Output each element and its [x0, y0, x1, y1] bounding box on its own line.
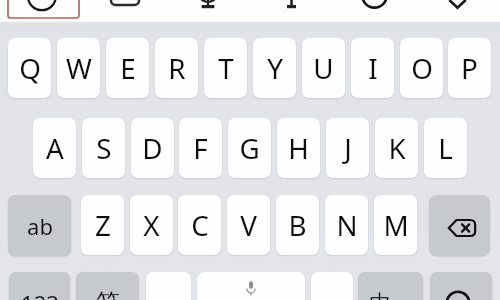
button[interactable]: P	[448, 38, 491, 98]
button[interactable]: V	[227, 195, 270, 255]
staticText: F	[193, 129, 208, 167]
button[interactable]: J	[326, 118, 369, 178]
staticText: T	[218, 49, 234, 87]
staticText: Y	[267, 49, 283, 87]
button[interactable]: F	[179, 118, 222, 178]
button[interactable]: Emoji	[361, 0, 388, 9]
staticText: J	[344, 129, 352, 167]
staticText: S	[96, 129, 112, 167]
staticText: B	[288, 206, 307, 244]
button[interactable]: Voice input	[200, 0, 216, 8]
staticText: D	[142, 129, 163, 167]
staticText: 符	[96, 288, 120, 300]
button[interactable]: 123	[9, 272, 70, 300]
staticText: X	[143, 206, 160, 244]
button[interactable]: G	[228, 118, 271, 178]
button[interactable]: E	[106, 38, 149, 98]
button[interactable]: ab	[8, 195, 71, 256]
button[interactable]: T	[204, 38, 247, 98]
staticText: N	[336, 206, 358, 244]
button[interactable]: Text settings	[287, 0, 296, 8]
staticText: R	[168, 49, 186, 87]
staticText: C	[191, 206, 209, 244]
staticText: 123	[21, 288, 59, 300]
button[interactable]: B	[276, 195, 319, 255]
staticText: E	[120, 49, 136, 87]
button[interactable]: X	[130, 195, 173, 255]
button[interactable]: Voice input	[197, 272, 305, 300]
staticText: M	[383, 206, 409, 244]
button[interactable]: Q	[8, 38, 51, 98]
button[interactable]: Z	[81, 195, 124, 255]
button[interactable]: C	[178, 195, 221, 255]
staticText: L	[438, 129, 453, 167]
button[interactable]: I	[351, 38, 394, 98]
button[interactable]: Clipboard	[111, 0, 139, 5]
button[interactable]	[146, 272, 191, 300]
staticText: A	[46, 129, 64, 167]
staticText: I	[368, 49, 378, 87]
button[interactable]: L	[424, 118, 467, 178]
staticText: P	[461, 49, 478, 87]
button[interactable]: S	[82, 118, 125, 178]
button[interactable]: A	[33, 118, 76, 178]
button[interactable]: M	[374, 195, 417, 255]
staticText: ab	[27, 211, 53, 241]
button[interactable]: N	[325, 195, 368, 255]
staticText: U	[313, 49, 334, 87]
button[interactable]: Y	[253, 38, 296, 98]
button[interactable]: H	[277, 118, 320, 178]
button[interactable]: 中	[358, 272, 423, 300]
staticText: G	[239, 129, 260, 167]
button[interactable]: Return	[430, 272, 492, 300]
staticText: V	[240, 206, 257, 244]
button[interactable]: O	[400, 38, 443, 98]
button[interactable]: K	[375, 118, 418, 178]
staticText: Z	[95, 206, 111, 244]
staticText: K	[388, 129, 406, 167]
button[interactable]: R	[155, 38, 198, 98]
staticText: H	[288, 129, 309, 167]
button[interactable]: Handwriting	[8, 0, 79, 18]
button[interactable]: 符	[76, 272, 139, 300]
staticText: O	[411, 49, 433, 87]
button[interactable]: D	[131, 118, 174, 178]
button[interactable]: U	[302, 38, 345, 98]
button[interactable]: Hide keyboard	[448, 0, 467, 9]
staticText: 中	[369, 289, 392, 300]
button[interactable]: Backspace	[429, 195, 490, 256]
button[interactable]: W	[57, 38, 100, 98]
staticText: W	[66, 49, 92, 87]
button[interactable]	[311, 272, 353, 300]
staticText: Q	[19, 49, 41, 87]
